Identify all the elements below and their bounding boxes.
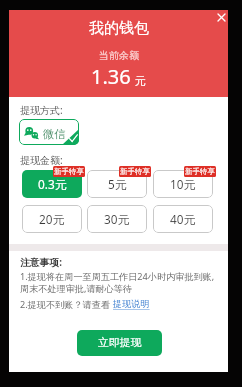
staticText: 当前余额 — [99, 49, 139, 62]
staticText: 2.提现不到账？请查看 — [20, 298, 113, 310]
staticText: 注意事项: — [20, 256, 62, 269]
staticText: 新手特享 — [120, 167, 150, 176]
staticText: 1.提现将在周一至周五工作日24小时内审批到账, 周末不处理审批,请耐心等待 — [20, 270, 215, 295]
staticText: 0.3元 — [38, 176, 67, 192]
staticText: 新手特享 — [54, 167, 84, 176]
staticText: 立即提现 — [98, 336, 142, 350]
button[interactable]: 30元 — [87, 205, 147, 233]
staticText: 40元 — [170, 211, 196, 227]
staticText: 30元 — [104, 211, 130, 227]
button[interactable]: 5元 — [87, 170, 147, 198]
button[interactable]: 微信 — [19, 119, 79, 145]
staticText: 20元 — [39, 211, 65, 227]
staticText: 新手特享 — [185, 167, 215, 176]
staticText: 我的钱包 — [89, 19, 149, 38]
button[interactable]: 20元 — [22, 205, 82, 233]
button[interactable]: Close — [214, 10, 228, 24]
staticText: 10元 — [170, 176, 196, 192]
staticText: 1.36 — [91, 63, 131, 90]
staticText: 提现说明 — [113, 298, 150, 310]
button[interactable]: 立即提现 — [77, 330, 162, 356]
button[interactable]: 10元 — [153, 170, 213, 198]
staticText: 微信 — [43, 127, 66, 141]
staticText: 元 — [135, 74, 146, 88]
staticText: 提现方式: — [20, 103, 63, 117]
staticText: 提现金额: — [20, 153, 63, 167]
staticText: 5元 — [108, 176, 127, 192]
button[interactable]: 40元 — [153, 205, 213, 233]
button[interactable]: 0.3元 — [22, 170, 82, 198]
